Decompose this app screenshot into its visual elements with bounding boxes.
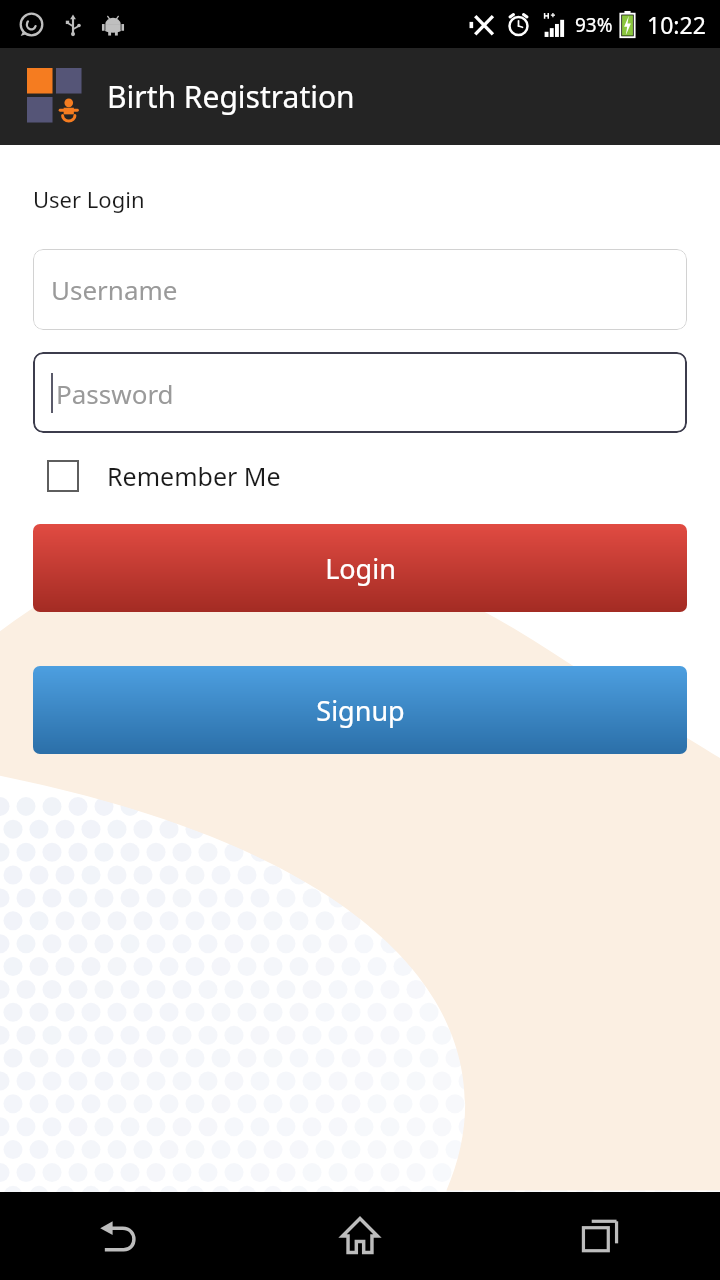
staticText: 93%	[575, 12, 613, 38]
button[interactable]: Login	[33, 524, 687, 612]
staticText: 10:22	[647, 9, 706, 40]
button[interactable]: Username	[33, 249, 687, 330]
button[interactable]: Back	[0, 1192, 240, 1280]
button[interactable]: Home	[240, 1192, 480, 1280]
button[interactable]: Signup	[33, 666, 687, 754]
staticText: Username	[51, 272, 178, 307]
button[interactable]: Password	[33, 352, 687, 433]
staticText: Signup	[316, 692, 405, 729]
staticText: Birth Registration	[107, 76, 355, 117]
button[interactable]: Remember Me	[33, 455, 281, 497]
staticText: User Login	[33, 184, 145, 214]
staticText: Password	[56, 376, 174, 411]
button[interactable]: Recent apps	[480, 1192, 720, 1280]
staticText: Login	[325, 550, 396, 587]
staticText: Remember Me	[107, 459, 281, 493]
